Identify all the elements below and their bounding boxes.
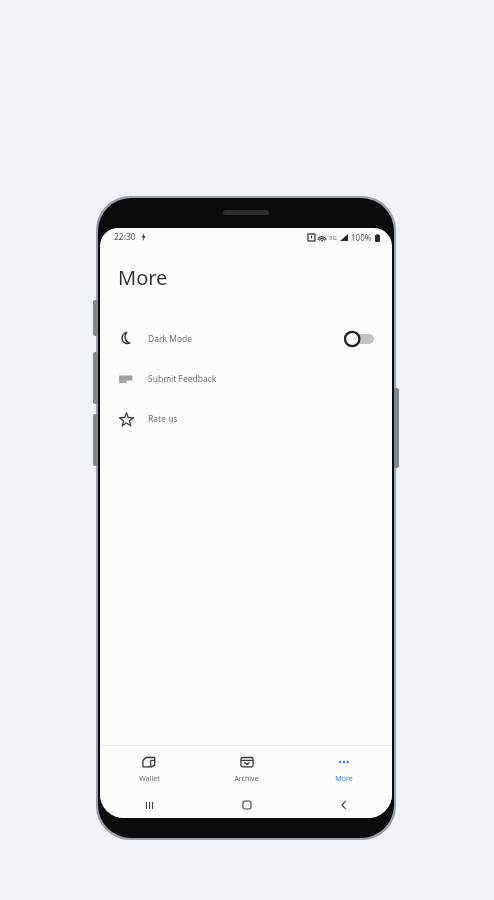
staticText: More	[335, 774, 353, 784]
button[interactable]: Recent apps	[100, 792, 198, 818]
button[interactable]: Wallet	[100, 746, 198, 792]
staticText: 100%	[351, 232, 372, 243]
staticText: Archive	[234, 774, 259, 784]
staticText: More	[118, 264, 168, 291]
button[interactable]: Back	[295, 792, 392, 818]
button[interactable]: Rate us	[100, 399, 392, 439]
button[interactable]: Archive	[198, 746, 295, 792]
staticText: Wallet	[139, 774, 160, 784]
button[interactable]: Submit Feedback	[100, 359, 392, 399]
staticText: Rate us	[148, 413, 178, 425]
button[interactable]: Dark Mode toggle	[344, 331, 374, 347]
staticText: 22:30	[114, 231, 136, 243]
staticText: 3G	[329, 234, 337, 242]
button[interactable]: Home	[198, 792, 295, 818]
button[interactable]: More	[295, 746, 392, 792]
button[interactable]: Dark Mode	[100, 319, 392, 359]
staticText: Dark Mode	[148, 333, 193, 345]
staticText: Submit Feedback	[148, 373, 217, 385]
